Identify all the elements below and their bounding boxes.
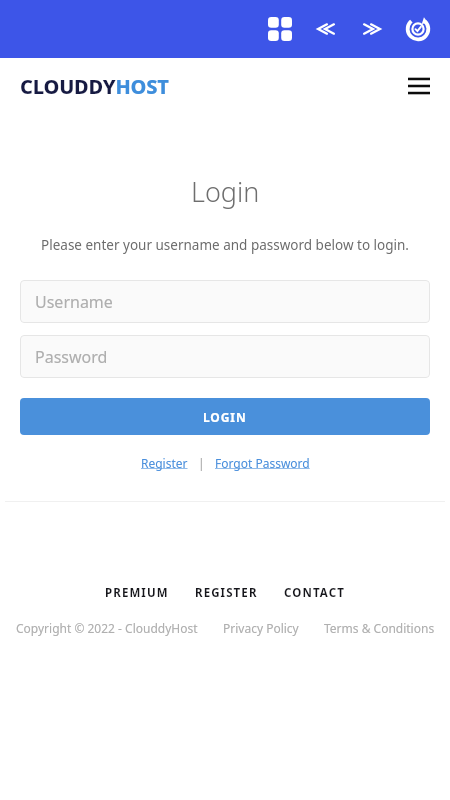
button[interactable]: REGISTER (195, 583, 258, 603)
button[interactable]: Terms & Conditions (324, 620, 435, 636)
staticText: CONTACT (284, 585, 345, 601)
button[interactable]: Register (139, 453, 190, 473)
staticText: Password (35, 346, 108, 368)
button[interactable]: Forgot Password (213, 453, 312, 473)
staticText: Please enter your username and password … (41, 236, 409, 254)
button[interactable]: Username (20, 280, 430, 323)
staticText: LOGIN (203, 409, 247, 425)
staticText: Register (141, 455, 188, 471)
staticText: CLOUDDYHOST (20, 73, 169, 100)
staticText: | (198, 455, 205, 471)
staticText: PREMIUM (105, 585, 169, 601)
button[interactable]: Menu (402, 69, 436, 103)
staticText: Terms & Conditions (324, 620, 435, 636)
button[interactable]: CLOUDDYHOST (20, 73, 169, 100)
button[interactable]: LOGIN (20, 398, 430, 435)
button[interactable]: Next (356, 13, 388, 45)
button[interactable]: Apps (264, 13, 296, 45)
button[interactable]: Privacy Policy (223, 620, 299, 636)
staticText: Privacy Policy (223, 620, 299, 636)
staticText: Copyright © 2022 - ClouddyHost (16, 620, 198, 636)
button[interactable]: Password (20, 335, 430, 378)
staticText: Username (35, 291, 113, 313)
button[interactable]: PREMIUM (105, 583, 169, 603)
staticText: REGISTER (195, 585, 258, 601)
staticText: Login (191, 173, 260, 210)
staticText: Forgot Password (215, 455, 310, 471)
button[interactable]: CONTACT (284, 583, 345, 603)
button[interactable]: Previous (310, 13, 342, 45)
button[interactable]: Refresh (402, 13, 434, 45)
